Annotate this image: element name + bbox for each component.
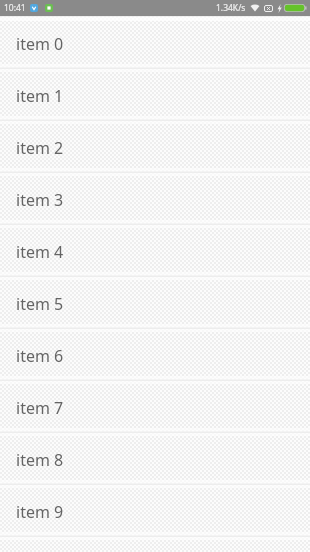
staticText: item 7: [16, 397, 64, 419]
button[interactable]: item 7: [0, 380, 310, 432]
button[interactable]: item 8: [0, 432, 310, 484]
staticText: item 5: [16, 293, 64, 315]
staticText: item 2: [16, 137, 64, 159]
staticText: item 8: [16, 449, 64, 471]
button[interactable]: item 3: [0, 172, 310, 224]
staticText: item 3: [16, 189, 64, 211]
button[interactable]: item 0: [0, 16, 310, 68]
button[interactable]: item 5: [0, 276, 310, 328]
staticText: item 0: [16, 33, 64, 55]
staticText: item 6: [16, 345, 64, 367]
button[interactable]: item 9: [0, 484, 310, 536]
button[interactable]: item 2: [0, 120, 310, 172]
staticText: item 4: [16, 241, 64, 263]
button[interactable]: item 4: [0, 224, 310, 276]
staticText: item 1: [16, 85, 64, 107]
button[interactable]: item 6: [0, 328, 310, 380]
button[interactable]: item 1: [0, 68, 310, 120]
staticText: 10:41: [4, 2, 26, 14]
staticText: 1.34K/s: [216, 2, 246, 14]
staticText: item 9: [16, 501, 64, 523]
